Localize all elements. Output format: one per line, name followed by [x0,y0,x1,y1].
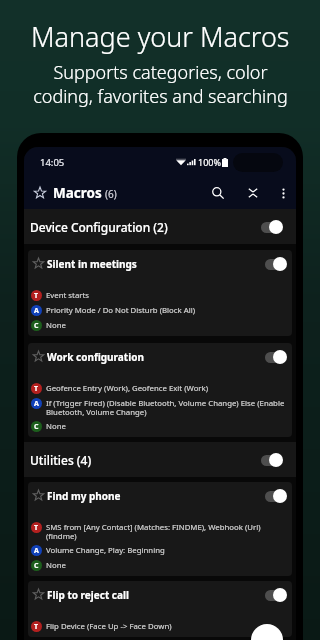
button[interactable]: Toggle [265,489,287,503]
staticText: None [46,320,66,331]
staticText: 100% [198,156,221,168]
staticText: None [46,560,66,571]
button[interactable]: Find my phone [28,482,292,576]
staticText: Geofence Entry (Work), Geofence Exit (Wo… [46,383,209,394]
button[interactable]: Work configuration [28,343,292,437]
staticText: If (Trigger Fired) (Disable Bluetooth, V… [46,398,288,417]
staticText: Supports categories, color coding, favor… [33,60,288,108]
staticText: A [34,546,39,556]
staticText: C [34,321,39,331]
staticText: Priority Mode / Do Not Disturb (Block Al… [46,305,196,316]
button[interactable]: Search [206,181,230,205]
staticText: T [34,622,39,632]
button[interactable]: Silent in meetings [28,250,292,336]
staticText: Device Configuration (2) [30,219,168,235]
staticText: T [34,523,39,533]
staticText: Event starts [46,290,90,301]
staticText: Work configuration [47,350,144,364]
button[interactable]: Collapse all [241,181,265,205]
staticText: SMS from [Any Contact] (Matches: FINDME)… [46,522,288,541]
staticText: C [34,561,39,571]
staticText: Find my phone [47,489,121,503]
button[interactable]: Favorites [31,184,49,202]
staticText: T [34,291,39,301]
staticText: 14:05 [40,156,65,169]
button[interactable]: Toggle [265,350,287,364]
staticText: Utilities (4) [30,452,92,468]
button[interactable]: Utilities (4) [30,442,290,477]
button[interactable]: Toggle [265,588,287,602]
staticText: A [34,306,39,316]
staticText: Flip to reject call [47,588,129,602]
button[interactable]: Device Configuration (2) [30,209,290,244]
button[interactable]: More options [273,183,293,203]
button[interactable]: Toggle [261,453,283,467]
staticText: Volume Change, Play: Beginning [46,545,165,556]
staticText: Flip Device (Face Up -> Face Down) [46,621,172,632]
staticText: Macros [53,184,102,202]
staticText: A [34,399,39,409]
button[interactable]: Toggle [265,257,287,271]
button[interactable]: Add macro [251,624,283,640]
staticText: C [34,422,39,432]
staticText: (6) [105,187,117,201]
staticText: None [46,421,66,432]
staticText: Manage your Macros [31,18,290,55]
staticText: T [34,384,39,394]
staticText: Silent in meetings [47,257,137,271]
button[interactable]: Toggle [261,220,283,234]
button[interactable]: Flip to reject call [28,581,292,637]
